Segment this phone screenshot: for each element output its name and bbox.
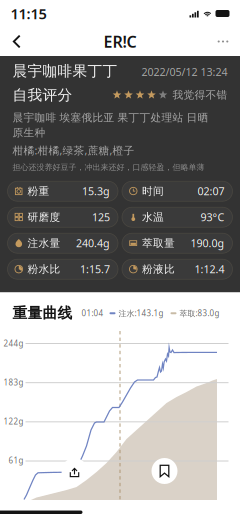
staticText: 190.0g	[190, 236, 224, 250]
staticText: ER!C	[103, 31, 136, 52]
staticText: 柑橘:柑橘,绿茶,蔗糖,橙子	[12, 143, 134, 157]
staticText: 重量曲线	[12, 304, 72, 322]
staticText: 粉重	[27, 185, 49, 198]
staticText: 时间	[142, 185, 164, 198]
staticText: 240.4g	[76, 236, 110, 250]
staticText: 61g	[8, 455, 23, 466]
button[interactable]: Bookmark	[151, 458, 177, 484]
button[interactable]: Back	[8, 30, 25, 52]
staticText: 粉液比	[142, 263, 175, 276]
staticText: 原生种	[12, 126, 45, 139]
staticText: 01:04	[81, 308, 103, 318]
staticText: 我觉得不错	[172, 88, 227, 102]
staticText: 244g	[3, 338, 23, 349]
staticText: 萃取量	[142, 237, 175, 250]
staticText: 183g	[3, 377, 23, 388]
staticText: 萃取:83.0g	[179, 308, 219, 318]
staticText: 93°C	[200, 210, 224, 224]
staticText: 11:15	[10, 4, 46, 23]
button[interactable]: More options	[214, 30, 231, 52]
staticText: 1:12.4	[194, 262, 224, 276]
staticText: 1:15.7	[80, 262, 110, 276]
staticText: 注水:143.1g	[118, 308, 163, 318]
staticText: 2022/05/12 13:24	[141, 65, 227, 79]
staticText: 担心还没养好豆子，冲出来还好，口感轻盈，但略单薄	[12, 162, 204, 172]
staticText: 注水量	[27, 237, 60, 250]
staticText: 晨宇咖啡果丁丁	[12, 62, 117, 80]
button[interactable]: Share	[61, 458, 87, 484]
staticText: 122g	[3, 416, 23, 427]
staticText: 自我评分	[12, 86, 72, 104]
staticText: 研磨度	[27, 211, 60, 224]
staticText: 15.3g	[82, 184, 110, 198]
staticText: 125	[92, 210, 110, 224]
staticText: 晨宇咖啡 埃塞俄比亚 果丁丁处理站 日晒	[12, 111, 208, 124]
staticText: 02:07	[197, 184, 224, 198]
staticText: 粉水比	[27, 263, 60, 276]
staticText: 水温	[142, 211, 164, 224]
